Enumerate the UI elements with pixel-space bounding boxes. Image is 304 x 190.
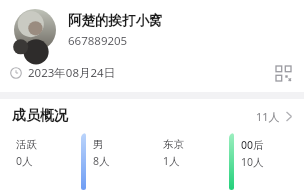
button[interactable]: 阿楚的挨打小窝 [0,0,304,58]
staticText: 667889205 [68,33,128,49]
staticText: 1人 [163,154,180,168]
button[interactable]: 男 [81,133,148,190]
button[interactable]: 成员概况 [0,99,304,133]
staticText: 活跃 [16,138,37,151]
staticText: 阿楚的挨打小窝 [68,12,163,29]
staticText: 10人 [241,155,264,169]
button[interactable]: Scan QR code [272,62,294,84]
staticText: 11人 [256,109,280,124]
staticText: 00后 [241,138,264,152]
button[interactable]: 00后 [229,133,296,190]
staticText: 0人 [16,154,33,168]
staticText: 成员概况 [12,107,68,125]
button[interactable]: 活跃 [8,133,74,190]
button[interactable]: 东京 [155,133,222,190]
staticText: 2023年08月24日 [28,65,116,81]
staticText: 东京 [163,138,184,151]
staticText: 8人 [93,154,110,168]
staticText: 男 [93,138,104,151]
